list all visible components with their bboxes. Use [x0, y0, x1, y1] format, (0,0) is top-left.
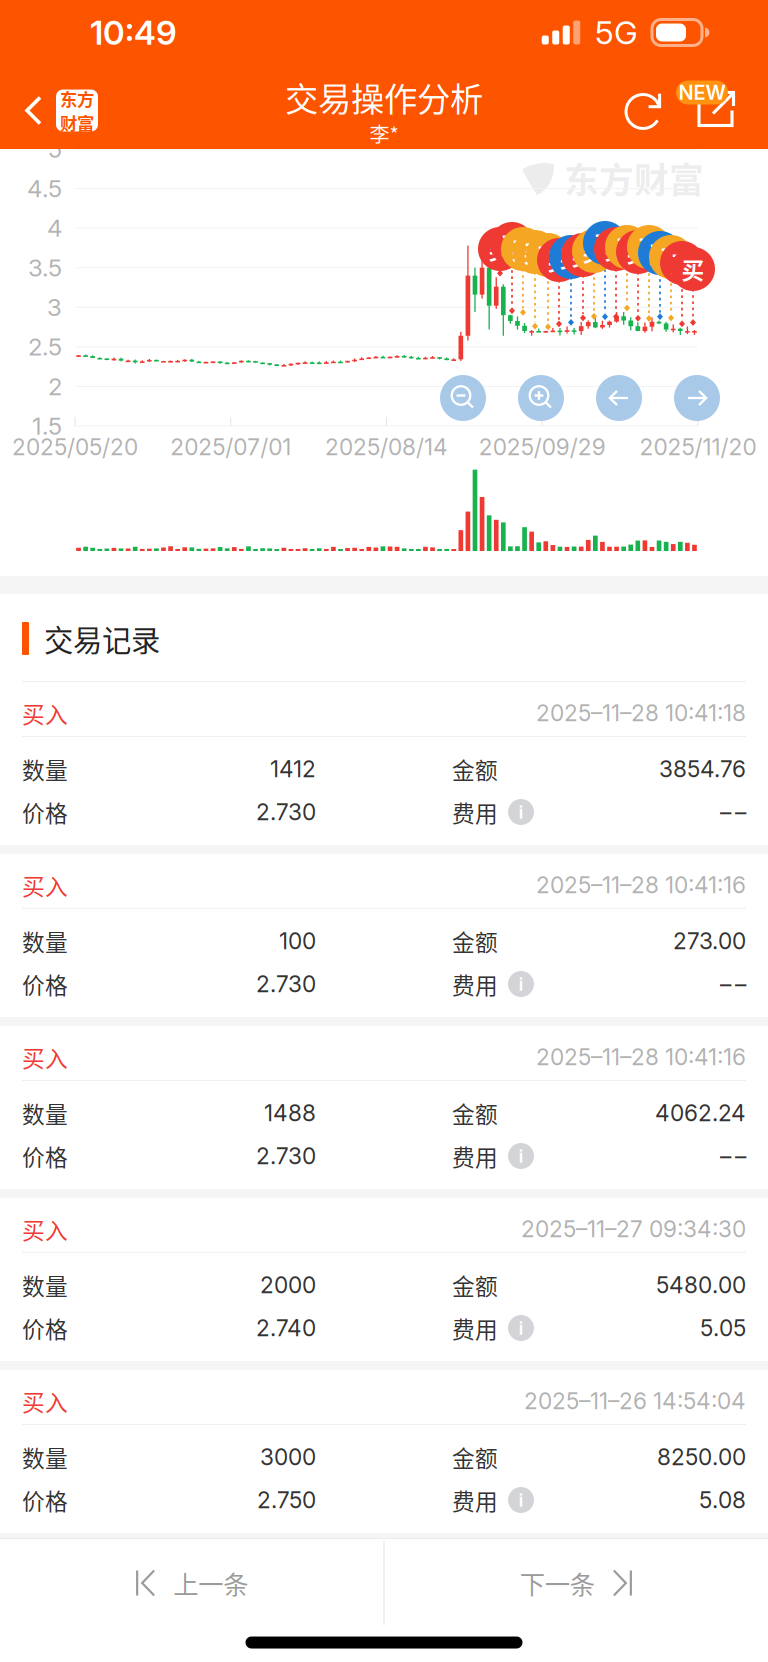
staticText: 买	[681, 253, 704, 285]
staticText: i	[518, 973, 523, 995]
staticText: 2000	[260, 1271, 316, 1299]
staticText: 买入	[22, 697, 68, 729]
staticText: 买	[670, 247, 693, 279]
staticText: 买	[571, 239, 594, 271]
staticText: 买	[615, 231, 638, 263]
staticText: 2025–11–26 14:54:04	[524, 1387, 746, 1415]
staticText: 2025–11–28 10:41:16	[536, 1043, 746, 1071]
staticText: 2025–11–28 10:41:18	[536, 699, 746, 727]
staticText: 2025–11–28 10:41:16	[536, 871, 746, 899]
staticText: 金额	[452, 1269, 498, 1301]
staticText: 买	[659, 241, 682, 273]
staticText: 上一条	[173, 1565, 248, 1601]
staticText: 2.740	[256, 1314, 316, 1342]
button[interactable]: 买入	[0, 1026, 768, 1189]
staticText: – –	[720, 798, 746, 826]
button[interactable]: 买入	[0, 1370, 768, 1533]
staticText: 买	[500, 228, 523, 260]
staticText: i	[518, 1317, 523, 1339]
staticText: 2025/09/29	[479, 433, 606, 461]
staticText: i	[518, 1489, 523, 1511]
staticText: 2.730	[256, 798, 316, 826]
staticText: 2.750	[257, 1486, 316, 1514]
staticText: 5.05	[700, 1314, 746, 1342]
staticText: 买入	[22, 869, 68, 901]
staticText: 2025–11–27 09:34:30	[521, 1215, 746, 1243]
staticText: 5480.00	[656, 1271, 746, 1299]
staticText: 买入	[22, 1385, 68, 1417]
staticText: 100	[279, 927, 316, 955]
staticText: 数量	[22, 753, 68, 785]
button[interactable]: 上一条	[0, 1539, 383, 1627]
staticText: 数量	[22, 1097, 68, 1129]
button[interactable]: Share	[676, 71, 746, 149]
staticText: 买	[536, 239, 559, 271]
staticText: 2025/05/20	[12, 433, 138, 461]
staticText: 费用	[452, 1312, 498, 1344]
staticText: 下一条	[520, 1565, 595, 1601]
staticText: 价格	[22, 1484, 68, 1516]
staticText: 1412	[270, 755, 316, 783]
staticText: 1488	[264, 1099, 316, 1127]
button[interactable]: Refresh	[616, 71, 676, 149]
button[interactable]: Pan right	[674, 375, 720, 421]
staticText: 273.00	[673, 927, 746, 955]
staticText: 费用	[452, 796, 498, 828]
staticText: 价格	[22, 796, 68, 828]
staticText: 费用	[452, 968, 498, 1000]
staticText: 买入	[22, 1041, 68, 1073]
button[interactable]: Pan left	[596, 375, 642, 421]
staticText: NEW	[678, 80, 725, 105]
button[interactable]: 买入	[0, 1198, 768, 1361]
staticText: 买	[637, 231, 660, 263]
staticText: 金额	[452, 753, 498, 785]
staticText: 价格	[22, 1312, 68, 1344]
staticText: 2.730	[256, 970, 316, 998]
staticText: 5	[48, 134, 62, 163]
staticText: 8250.00	[657, 1443, 746, 1471]
button[interactable]: 买入	[0, 682, 768, 845]
button[interactable]: 下一条	[385, 1539, 768, 1627]
staticText: 5.08	[699, 1486, 746, 1514]
staticText: 买	[626, 236, 649, 268]
button[interactable]: Zoom out	[440, 375, 486, 421]
staticText: 2.730	[256, 1142, 316, 1170]
staticText: 价格	[22, 1140, 68, 1172]
staticText: 买	[488, 233, 511, 265]
staticText: 买	[582, 235, 605, 267]
button[interactable]: 买入	[0, 854, 768, 1017]
staticText: 3000	[260, 1443, 316, 1471]
staticText: 4062.24	[655, 1099, 746, 1127]
staticText: 4	[47, 214, 62, 243]
staticText: 买	[648, 237, 671, 269]
button[interactable]: Zoom in	[518, 375, 564, 421]
staticText: – –	[720, 1142, 746, 1170]
staticText: – –	[720, 970, 746, 998]
staticText: i	[518, 801, 523, 823]
staticText: 2025/08/14	[325, 433, 448, 461]
staticText: 买	[559, 241, 582, 273]
staticText: 买	[523, 236, 546, 268]
staticText: 3854.76	[659, 755, 746, 783]
staticText: 交易记录	[44, 617, 160, 660]
staticText: i	[518, 1145, 523, 1167]
staticText: 3.5	[28, 253, 62, 282]
button[interactable]: 东方	[0, 71, 112, 149]
staticText: 2	[48, 372, 62, 401]
staticText: 李*	[369, 119, 398, 148]
staticText: 数量	[22, 1441, 68, 1473]
staticText: 数量	[22, 925, 68, 957]
staticText: 交易操作分析	[285, 73, 483, 121]
staticText: 金额	[452, 925, 498, 957]
staticText: 东方财富	[564, 153, 704, 203]
staticText: 买	[593, 227, 616, 259]
staticText: 费用	[452, 1140, 498, 1172]
staticText: 买入	[22, 1213, 68, 1245]
staticText: 2025/07/01	[170, 433, 291, 461]
staticText: 2.5	[28, 332, 62, 361]
staticText: 东方	[60, 86, 94, 111]
staticText: 价格	[22, 968, 68, 1000]
staticText: 金额	[452, 1097, 498, 1129]
staticText: 5G	[595, 13, 638, 52]
staticText: 3	[47, 293, 62, 322]
